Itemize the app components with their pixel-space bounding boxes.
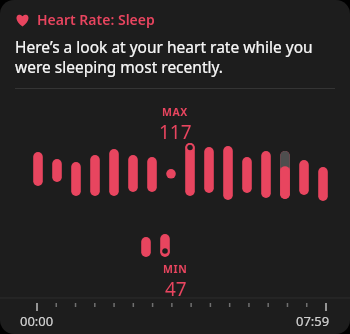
button[interactable]: Heart rate xyxy=(0,0,350,29)
staticText: Here’s a look at your heart rate while y… xyxy=(15,36,335,78)
staticText: 47 xyxy=(165,276,187,302)
other: Heart rate xyxy=(15,12,30,27)
staticText: MAX xyxy=(162,105,189,119)
staticText: MIN xyxy=(163,262,188,276)
staticText: 117 xyxy=(159,119,192,145)
staticText: 07:59 xyxy=(296,312,330,330)
staticText: 00:00 xyxy=(20,312,54,330)
staticText: Heart Rate: Sleep xyxy=(37,10,155,29)
